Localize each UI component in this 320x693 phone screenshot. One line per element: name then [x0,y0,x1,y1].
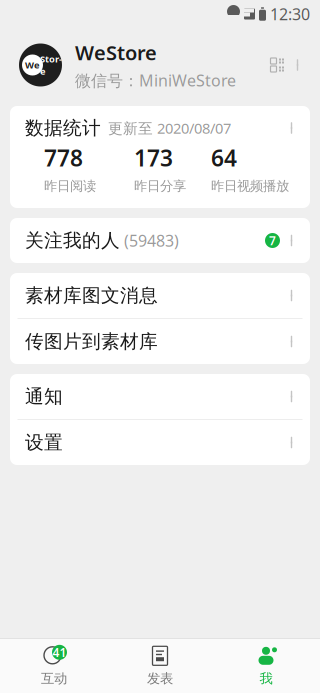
staticText: 昨日分享 [134,178,186,194]
button[interactable]: 传图片到素材库 [10,319,310,364]
staticText: 设置 [25,431,63,454]
staticText: 数据统计 [25,116,101,139]
staticText: (59483) [124,230,179,251]
staticText: We [25,59,40,71]
staticText: 41 [52,644,66,660]
button[interactable]: 41 [1,639,107,693]
button[interactable]: We [0,28,320,102]
staticText: 发表 [147,670,173,687]
button[interactable]: 数据统计 [10,106,310,208]
staticText: WeStore [75,39,157,66]
staticText: 通知 [25,385,63,408]
staticText: 更新至 2020/08/07 [108,118,231,138]
staticText: 我 [259,670,272,687]
staticText: 12:30 [270,3,310,25]
button[interactable]: 设置 [10,420,310,465]
button[interactable]: 我 [213,639,319,693]
staticText: 173 [134,143,173,173]
button[interactable]: 通知 [10,374,310,419]
staticText: 互动 [41,670,67,687]
button[interactable]: 发表 [107,639,213,693]
staticText: 昨日视频播放 [211,178,289,194]
staticText: 素材库图文消息 [25,284,158,307]
button[interactable]: 素材库图文消息 [10,273,310,318]
staticText: 7 [269,232,276,248]
staticText: Store [40,53,62,77]
staticText: 传图片到素材库 [25,330,158,353]
staticText: 微信号：MiniWeStore [75,70,236,91]
staticText: 778 [44,143,83,173]
button[interactable]: 关注我的人 [10,218,310,263]
staticText: 64 [211,143,237,173]
staticText: 关注我的人 [25,229,120,252]
staticText: 昨日阅读 [44,178,96,194]
